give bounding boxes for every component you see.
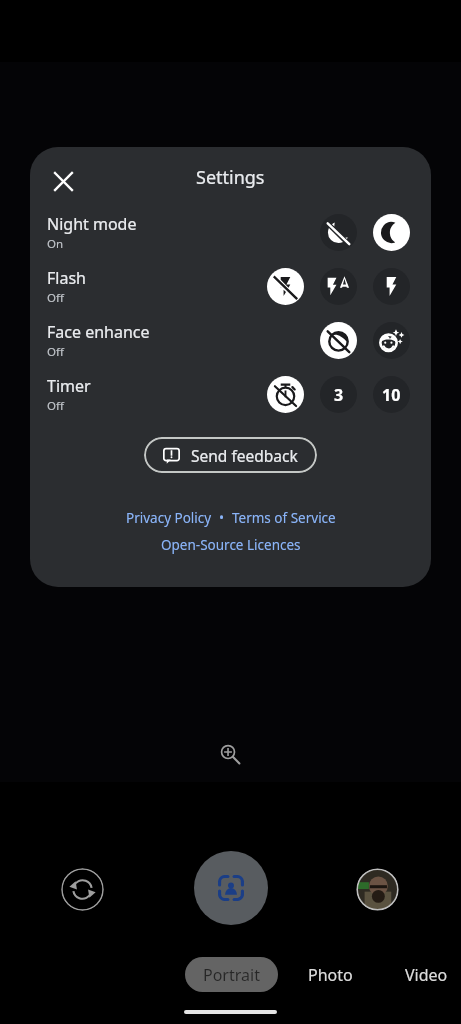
button[interactable]: Face enhance on [373, 322, 410, 359]
button[interactable]: Face enhance [30, 313, 431, 367]
button[interactable]: Flash [30, 259, 431, 313]
staticText: Off [47, 290, 64, 306]
button[interactable]: Timer 10 seconds [373, 376, 410, 413]
staticText: Timer [47, 375, 91, 397]
button[interactable]: Photo [290, 957, 371, 992]
button[interactable]: Night mode off [320, 214, 357, 251]
button[interactable]: Timer off [267, 376, 304, 413]
button[interactable]: Zoom in [209, 733, 251, 775]
button[interactable]: Privacy Policy [126, 509, 212, 527]
button[interactable]: Flash auto [320, 268, 357, 305]
button[interactable]: Face enhance off [320, 322, 357, 359]
staticText: Night mode [47, 213, 137, 235]
button[interactable]: Timer [30, 367, 431, 421]
button[interactable]: Send feedback [144, 437, 317, 473]
staticText: 10 [382, 384, 401, 406]
button[interactable]: Open-Source Licences [161, 536, 301, 554]
staticText: Photo [308, 964, 353, 986]
button[interactable]: Flash off [267, 268, 304, 305]
button[interactable]: Open gallery [356, 868, 399, 911]
button[interactable]: Take photo [194, 851, 268, 925]
button[interactable]: Terms of Service [232, 509, 336, 527]
button[interactable]: Night mode [30, 205, 431, 259]
staticText: Video [405, 964, 448, 986]
button[interactable]: Portrait [185, 957, 278, 992]
staticText: Off [47, 344, 64, 360]
button[interactable]: Timer 3 seconds [320, 376, 357, 413]
staticText: Portrait [203, 964, 260, 986]
staticText: Flash [47, 267, 86, 289]
button[interactable]: Night mode on [373, 214, 410, 251]
staticText: Face enhance [47, 321, 150, 343]
staticText: On [47, 236, 64, 252]
button[interactable]: Switch camera [61, 868, 104, 911]
staticText: Settings [196, 165, 265, 190]
button[interactable]: Flash on [373, 268, 410, 305]
button[interactable]: Close settings [40, 158, 86, 204]
staticText: Off [47, 398, 64, 414]
staticText: • [212, 509, 232, 527]
button[interactable]: Video [391, 957, 461, 992]
staticText: 3 [334, 384, 344, 406]
staticText: Send feedback [191, 445, 298, 466]
